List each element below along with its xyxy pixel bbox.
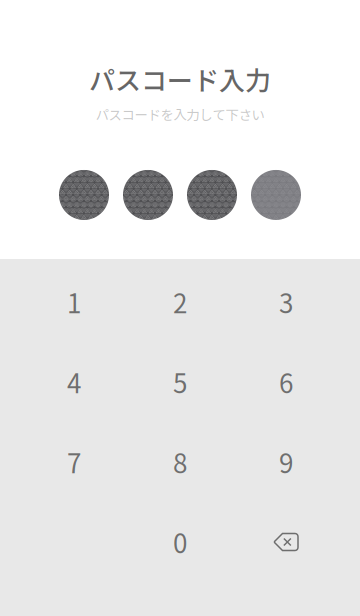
button[interactable]: 7 <box>21 422 127 502</box>
button[interactable]: Delete <box>233 502 339 582</box>
staticText: 9 <box>279 443 293 481</box>
staticText: パスコード入力 <box>89 60 271 98</box>
button[interactable]: 3 <box>233 262 339 342</box>
button[interactable]: 5 <box>127 342 233 422</box>
staticText: 6 <box>279 363 293 401</box>
button[interactable]: 8 <box>127 422 233 502</box>
staticText: 7 <box>67 443 81 481</box>
button[interactable]: 4 <box>21 342 127 422</box>
staticText: 1 <box>67 283 81 321</box>
staticText: 8 <box>173 443 187 481</box>
staticText: 4 <box>67 363 81 401</box>
button[interactable]: 1 <box>21 262 127 342</box>
button[interactable]: 6 <box>233 342 339 422</box>
staticText: パスコードを入力して下さい <box>95 105 264 124</box>
staticText: 2 <box>173 283 187 321</box>
button[interactable]: 0 <box>127 502 233 582</box>
staticText: 5 <box>173 363 187 401</box>
staticText: 3 <box>279 283 293 321</box>
button[interactable]: 2 <box>127 262 233 342</box>
button[interactable]: 9 <box>233 422 339 502</box>
staticText: 0 <box>173 523 187 561</box>
